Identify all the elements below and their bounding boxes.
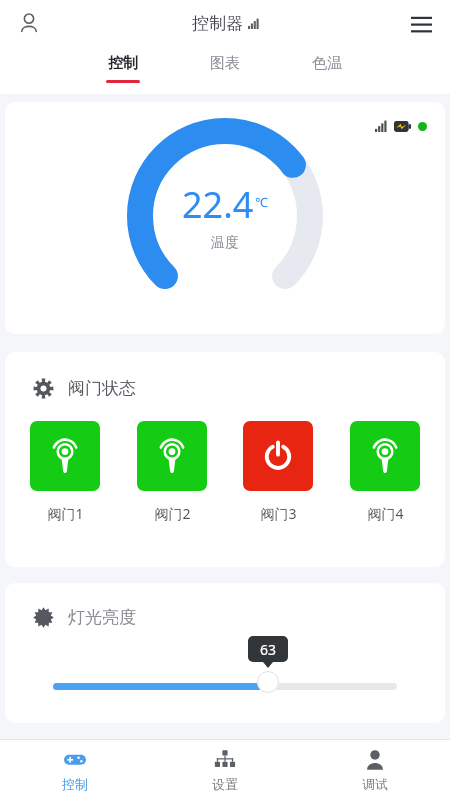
staticText: 阀门4 (367, 504, 404, 523)
button[interactable]: 阀门1 (29, 421, 101, 523)
staticText: 设置 (212, 776, 238, 792)
button[interactable]: 控制 (0, 740, 150, 800)
button[interactable]: 阀门2 (136, 421, 208, 523)
staticText: 阀门2 (154, 504, 191, 523)
staticText: 阀门状态 (68, 378, 136, 399)
staticText: 色温 (312, 54, 342, 73)
button[interactable]: Account (10, 4, 48, 42)
button[interactable]: 控制 (91, 46, 155, 94)
button[interactable]: Menu (402, 4, 440, 42)
button[interactable]: 阀门3 (242, 421, 314, 523)
button[interactable]: 设置 (150, 740, 300, 800)
button[interactable]: 调试 (300, 740, 450, 800)
staticText: 控制 (62, 776, 88, 792)
staticText: 阀门1 (47, 504, 84, 523)
staticText: 控制 (108, 54, 138, 73)
staticText: 22.4 (182, 180, 254, 229)
staticText: 调试 (362, 776, 388, 792)
staticText: 阀门3 (260, 504, 297, 523)
button[interactable]: 色温 (295, 46, 359, 94)
staticText: ℃ (255, 193, 268, 211)
staticText: 63 (260, 640, 277, 659)
button[interactable]: 阀门4 (349, 421, 421, 523)
button[interactable]: Brightness slider (53, 642, 397, 704)
button[interactable]: 图表 (193, 46, 257, 94)
staticText: 温度 (211, 234, 239, 252)
staticText: 图表 (210, 54, 240, 73)
staticText: 控制器 (192, 13, 243, 34)
staticText: 灯光亮度 (68, 607, 136, 628)
